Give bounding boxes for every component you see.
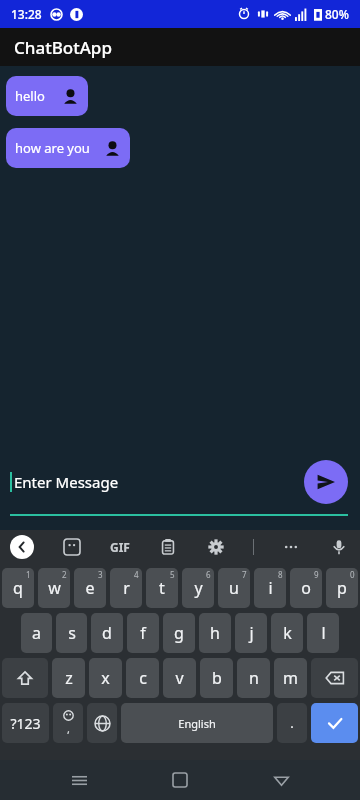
button[interactable]: n	[237, 658, 270, 698]
button[interactable]: Back	[10, 535, 34, 559]
button[interactable]: More options	[280, 536, 302, 558]
staticText: j	[249, 622, 254, 644]
button[interactable]: g	[163, 613, 195, 653]
staticText: v	[175, 667, 184, 689]
button[interactable]: Home	[158, 760, 202, 800]
staticText: n	[249, 667, 259, 689]
staticText: d	[102, 622, 112, 644]
button[interactable]: Voice input	[328, 536, 350, 558]
staticText: t	[159, 577, 165, 599]
button[interactable]: x	[89, 658, 122, 698]
staticText: l	[321, 622, 326, 644]
button[interactable]: a	[21, 613, 52, 653]
staticText: s	[68, 622, 76, 644]
button[interactable]: d	[91, 613, 123, 653]
staticText: 1	[26, 569, 31, 580]
staticText: 9	[314, 569, 319, 580]
staticText: Enter Message	[14, 472, 119, 492]
staticText: how are you	[15, 139, 90, 157]
staticText: English	[178, 716, 216, 731]
button[interactable]: Recents	[57, 760, 101, 800]
staticText: h	[210, 622, 220, 644]
button[interactable]: 4	[110, 568, 142, 608]
button[interactable]: Enter Message	[10, 460, 296, 504]
staticText: 80%	[325, 6, 349, 22]
staticText: f	[140, 622, 146, 644]
staticText: 6	[206, 569, 211, 580]
staticText: o	[301, 577, 311, 599]
button[interactable]: how are you	[6, 128, 130, 168]
staticText: u	[229, 577, 239, 599]
staticText: y	[194, 577, 203, 599]
staticText: x	[101, 667, 110, 689]
staticText: 0	[350, 569, 355, 580]
button[interactable]: 7	[218, 568, 250, 608]
button[interactable]: 2	[38, 568, 70, 608]
button[interactable]: Clipboard	[157, 536, 179, 558]
button[interactable]: v	[163, 658, 196, 698]
button[interactable]: l	[307, 613, 339, 653]
button[interactable]: 8	[254, 568, 286, 608]
staticText: 3	[98, 569, 103, 580]
staticText: ?123	[10, 714, 41, 733]
staticText: ChatBotApp	[14, 36, 112, 59]
staticText: 13:28	[11, 6, 42, 22]
staticText: m	[283, 667, 298, 689]
staticText: 8	[278, 569, 283, 580]
staticText: r	[123, 577, 130, 599]
button[interactable]: k	[271, 613, 303, 653]
staticText: 5	[170, 569, 175, 580]
button[interactable]: 0	[326, 568, 358, 608]
button[interactable]: Change language	[87, 703, 117, 743]
staticText: ,	[67, 721, 70, 736]
staticText: c	[139, 667, 147, 689]
button[interactable]: 5	[146, 568, 178, 608]
button[interactable]: Settings	[205, 536, 227, 558]
button[interactable]: m	[274, 658, 307, 698]
staticText: k	[283, 622, 292, 644]
button[interactable]: .	[277, 703, 307, 743]
button[interactable]: Send	[304, 460, 348, 504]
button[interactable]: 9	[290, 568, 322, 608]
button[interactable]: ?123	[2, 703, 49, 743]
button[interactable]: c	[126, 658, 159, 698]
button[interactable]: 3	[74, 568, 106, 608]
staticText: GIF	[110, 539, 130, 555]
staticText: q	[13, 577, 23, 599]
button[interactable]: GIF	[110, 539, 130, 555]
staticText: e	[85, 577, 95, 599]
staticText: w	[48, 577, 61, 599]
button[interactable]: z	[52, 658, 85, 698]
staticText: 4	[134, 569, 139, 580]
button[interactable]: Shift	[2, 658, 48, 698]
staticText: g	[174, 622, 184, 644]
button[interactable]: Stickers	[61, 536, 83, 558]
button[interactable]: 1	[2, 568, 34, 608]
staticText: 7	[242, 569, 247, 580]
staticText: .	[290, 714, 294, 732]
button[interactable]: s	[56, 613, 87, 653]
staticText: i	[268, 577, 273, 599]
button[interactable]: h	[199, 613, 231, 653]
button[interactable]: hello	[6, 76, 88, 116]
staticText: z	[65, 667, 73, 689]
staticText: b	[212, 667, 222, 689]
button[interactable]: English	[121, 703, 273, 743]
button[interactable]: Back	[259, 760, 303, 800]
button[interactable]: Enter	[311, 703, 358, 743]
button[interactable]: 6	[182, 568, 214, 608]
button[interactable]: Emoji	[53, 703, 83, 743]
staticText: p	[337, 577, 347, 599]
button[interactable]: b	[200, 658, 233, 698]
button[interactable]: f	[127, 613, 159, 653]
button[interactable]: Backspace	[311, 658, 358, 698]
staticText: hello	[15, 87, 45, 105]
staticText: a	[32, 622, 41, 644]
button[interactable]: j	[235, 613, 267, 653]
staticText: 2	[62, 569, 67, 580]
